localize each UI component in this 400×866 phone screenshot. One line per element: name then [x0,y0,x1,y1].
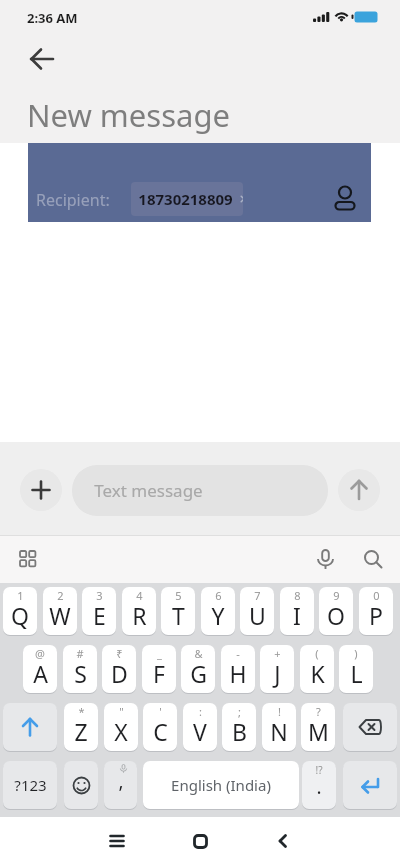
button[interactable] [305,539,345,579]
button[interactable]: 3 [82,587,116,635]
button[interactable]: ! [262,703,296,751]
button[interactable]: ) [339,645,373,693]
staticText: I [293,600,301,631]
staticText: New message [27,94,230,136]
staticText: V [193,716,207,747]
staticText: English (India) [171,775,271,795]
staticText: G [190,658,207,689]
staticText: T [172,600,185,631]
button[interactable] [8,539,48,579]
staticText: Text message [94,479,203,502]
button[interactable]: _ [142,645,176,693]
staticText: : [199,704,202,719]
staticText: W [49,600,71,631]
staticText: @ [35,646,45,661]
staticText: ?123 [14,775,47,795]
staticText: _ [157,646,162,661]
button[interactable]: 2 [43,587,77,635]
button[interactable]: ? [301,703,335,751]
button[interactable] [97,821,137,861]
staticText: C [153,716,168,747]
button[interactable] [64,761,98,809]
staticText: O [327,600,345,631]
button[interactable]: 1 [3,587,37,635]
staticText: Recipient: [36,189,110,211]
button[interactable]: # [63,645,97,693]
staticText: F [153,658,165,689]
staticText: K [310,658,325,689]
staticText: M [308,716,329,747]
button[interactable]: @ [23,645,57,693]
staticText: - [236,646,240,661]
button[interactable] [20,469,62,511]
staticText: R [132,600,147,631]
button[interactable]: * [64,703,98,751]
button[interactable] [180,821,220,861]
staticText: 4 [136,588,143,603]
staticText: D [111,658,128,689]
staticText: S [74,658,87,689]
button[interactable]: ₹ [102,645,136,693]
staticText: L [350,658,363,689]
staticText: H [229,658,247,689]
button[interactable] [343,761,397,809]
button[interactable]: 5 [161,587,195,635]
staticText: # [76,646,84,661]
staticText: 6 [215,588,222,603]
staticText: B [232,716,247,747]
staticText: & [194,646,203,661]
button[interactable]: ; [222,703,256,751]
staticText: , [118,768,124,794]
button[interactable]: ' [143,703,177,751]
staticText: J [274,658,281,689]
staticText: !? [315,763,323,777]
staticText: 8 [294,588,301,603]
button[interactable] [325,178,365,218]
button[interactable] [353,539,393,579]
staticText: 1 [17,588,24,603]
staticText: 5 [175,588,182,603]
button[interactable] [263,821,303,861]
button[interactable]: : [183,703,217,751]
button[interactable]: 6 [201,587,235,635]
staticText: 0 [373,588,380,603]
button[interactable]: !? [302,761,336,809]
button[interactable]: 4 [122,587,156,635]
button[interactable]: + [260,645,294,693]
button[interactable]: Text message [72,465,328,516]
button[interactable]: & [181,645,215,693]
staticText: 3 [96,588,103,603]
button[interactable]: " [104,703,138,751]
button[interactable]: 8 [280,587,314,635]
button[interactable]: - [221,645,255,693]
staticText: ₹ [116,646,123,661]
staticText: Z [74,716,88,747]
staticText: A [33,658,48,689]
staticText: ) [354,646,358,661]
staticText: P [369,600,383,631]
staticText: ' [159,704,162,719]
button[interactable] [343,703,397,751]
staticText: Y [211,600,225,631]
button[interactable] [3,703,57,751]
button[interactable] [338,469,380,511]
button[interactable]: ?123 [3,761,57,809]
staticText: U [249,600,266,631]
staticText: Q [11,600,29,631]
staticText: 7 [254,588,261,603]
staticText: . [316,774,322,800]
staticText: N [270,716,288,747]
button[interactable]: English (India) [143,761,299,809]
staticText: ? [316,704,321,719]
button[interactable]: , [104,761,137,809]
button[interactable]: 0 [359,587,393,635]
staticText: 18730218809 [138,189,233,209]
button[interactable]: 7 [240,587,274,635]
staticText: 2:36 AM [27,9,78,27]
staticText: 2 [57,588,64,603]
button[interactable] [24,41,60,77]
button[interactable]: 18730218809 [131,182,243,216]
button[interactable]: ( [300,645,334,693]
staticText: ( [315,646,319,661]
button[interactable]: 9 [319,587,353,635]
